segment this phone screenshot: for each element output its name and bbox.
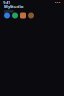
staticText: 9:41 (3, 0, 10, 5)
staticText: online (4, 10, 14, 13)
staticText: MyStudio (4, 4, 24, 9)
staticText: ••• (55, 0, 61, 5)
